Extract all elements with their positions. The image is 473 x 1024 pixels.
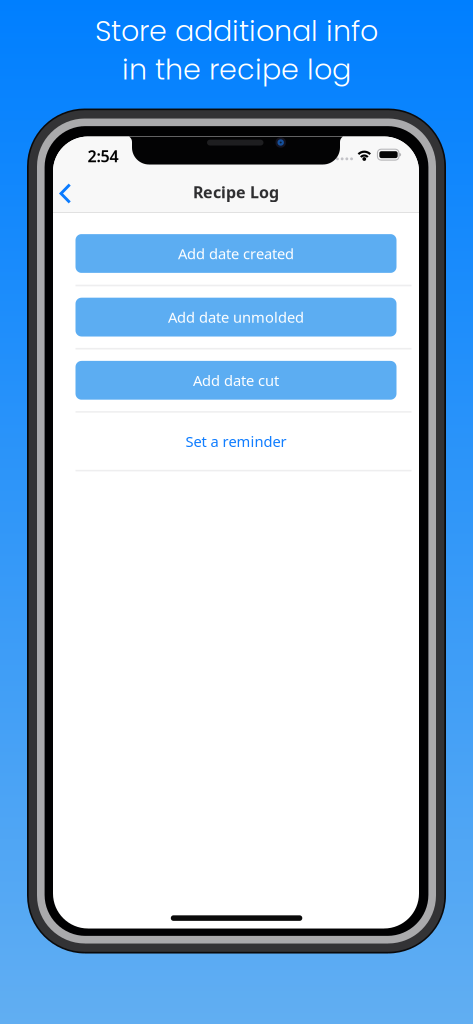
button[interactable]: Add date unmolded	[75, 298, 396, 336]
button[interactable]: Add date cut	[75, 361, 396, 400]
staticText: Add date unmolded	[168, 307, 304, 327]
staticText: Recipe Log	[193, 181, 279, 203]
staticText: in the recipe log	[122, 49, 351, 89]
staticText: 2:54	[87, 145, 118, 167]
staticText: Store additional info	[95, 11, 378, 51]
button[interactable]: Back	[53, 164, 97, 212]
button[interactable]: Set a reminder	[75, 422, 396, 460]
staticText: Add date created	[178, 244, 294, 263]
staticText: Add date cut	[193, 371, 279, 390]
button[interactable]: Add date created	[75, 234, 396, 273]
staticText: Set a reminder	[185, 431, 286, 451]
